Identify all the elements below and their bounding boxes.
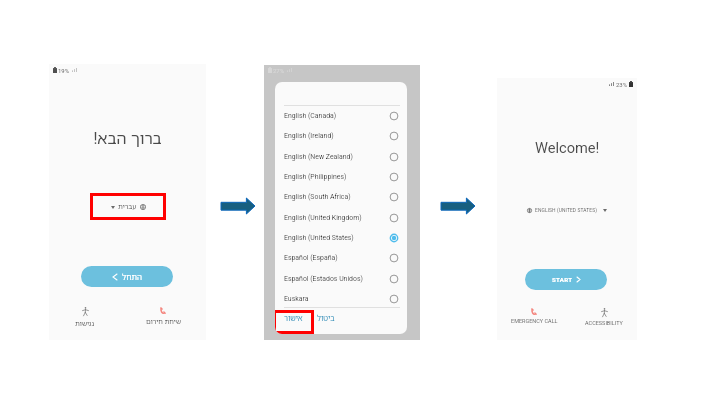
staticText: ביטול bbox=[317, 313, 335, 323]
button[interactable]: English (United Kingdom) bbox=[284, 208, 399, 228]
button[interactable]: Español (Estados Unidos) bbox=[284, 269, 399, 289]
button[interactable]: אישור bbox=[275, 310, 314, 334]
button[interactable]: English (United States) bbox=[284, 228, 399, 248]
staticText: START bbox=[552, 276, 573, 283]
staticText: ENGLISH (UNITED STATES) bbox=[535, 207, 598, 213]
staticText: 23% bbox=[616, 81, 628, 88]
staticText: 27% bbox=[273, 67, 285, 73]
staticText: English (Philippines) bbox=[284, 173, 347, 181]
staticText: עברית bbox=[118, 202, 137, 212]
button[interactable]: English (Canada) bbox=[284, 106, 399, 126]
staticText: English (South Africa) bbox=[284, 193, 351, 201]
staticText: שיחת חירום bbox=[146, 317, 181, 326]
staticText: Euskara bbox=[284, 295, 309, 303]
button[interactable]: עברית bbox=[90, 193, 166, 220]
staticText: ברוך הבא! bbox=[93, 127, 162, 149]
button[interactable]: Accessibility bbox=[60, 307, 110, 329]
button[interactable]: ביטול bbox=[313, 310, 339, 334]
staticText: 19% bbox=[58, 67, 70, 73]
button[interactable]: English (Ireland) bbox=[284, 126, 399, 146]
button[interactable]: English (New Zealand) bbox=[284, 147, 399, 167]
button[interactable]: ENGLISH (UNITED STATES) bbox=[527, 207, 607, 213]
staticText: English (New Zealand) bbox=[284, 153, 353, 161]
button[interactable]: Accessibility bbox=[574, 308, 634, 326]
staticText: Welcome! bbox=[535, 139, 600, 156]
staticText: התחל bbox=[122, 271, 142, 282]
button[interactable]: Español (España) bbox=[284, 248, 399, 268]
staticText: אישור bbox=[284, 313, 303, 323]
staticText: ACCESSIBILITY bbox=[585, 320, 623, 326]
button[interactable]: English (South Africa) bbox=[284, 187, 399, 207]
button[interactable]: Euskara bbox=[284, 289, 399, 309]
button[interactable]: English (Philippines) bbox=[284, 167, 399, 187]
staticText: Español (Estados Unidos) bbox=[284, 275, 363, 283]
button[interactable]: Emergency call bbox=[133, 307, 193, 326]
button[interactable]: START bbox=[525, 269, 607, 290]
button[interactable]: Emergency call bbox=[504, 308, 564, 324]
staticText: Español (España) bbox=[284, 254, 338, 262]
button[interactable]: התחל bbox=[81, 266, 173, 287]
staticText: English (United Kingdom) bbox=[284, 214, 362, 222]
staticText: English (United States) bbox=[284, 234, 354, 242]
staticText: English (Canada) bbox=[284, 112, 337, 120]
staticText: נגישות bbox=[75, 319, 95, 329]
staticText: EMERGENCY CALL bbox=[511, 318, 558, 324]
staticText: English (Ireland) bbox=[284, 132, 334, 140]
